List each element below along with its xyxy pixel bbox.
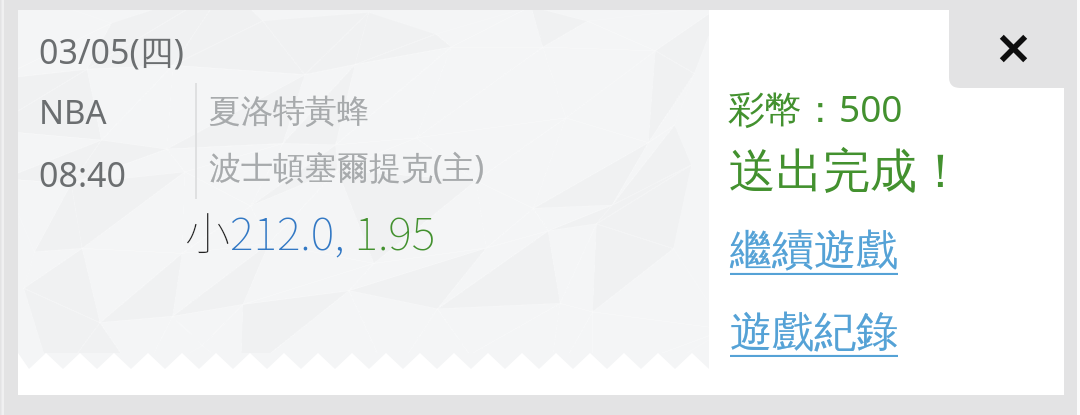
staticText: 遊戲紀錄	[730, 306, 898, 359]
staticText: 夏洛特黃蜂	[209, 91, 369, 131]
staticText: 彩幣：500	[728, 82, 903, 133]
staticText: 波士頓塞爾提克(主)	[209, 145, 485, 189]
button[interactable]: 遊戲紀錄	[730, 306, 898, 359]
staticText: NBA	[39, 89, 107, 134]
button[interactable]: Close	[949, 0, 1080, 88]
staticText: 送出完成！	[729, 142, 964, 201]
staticText: 08:40	[39, 151, 126, 197]
staticText: 小212.0, 1.95	[185, 198, 436, 263]
staticText: 03/05(四)	[39, 28, 184, 74]
staticText: 繼續遊戲	[730, 224, 898, 277]
button[interactable]: 繼續遊戲	[730, 224, 898, 277]
